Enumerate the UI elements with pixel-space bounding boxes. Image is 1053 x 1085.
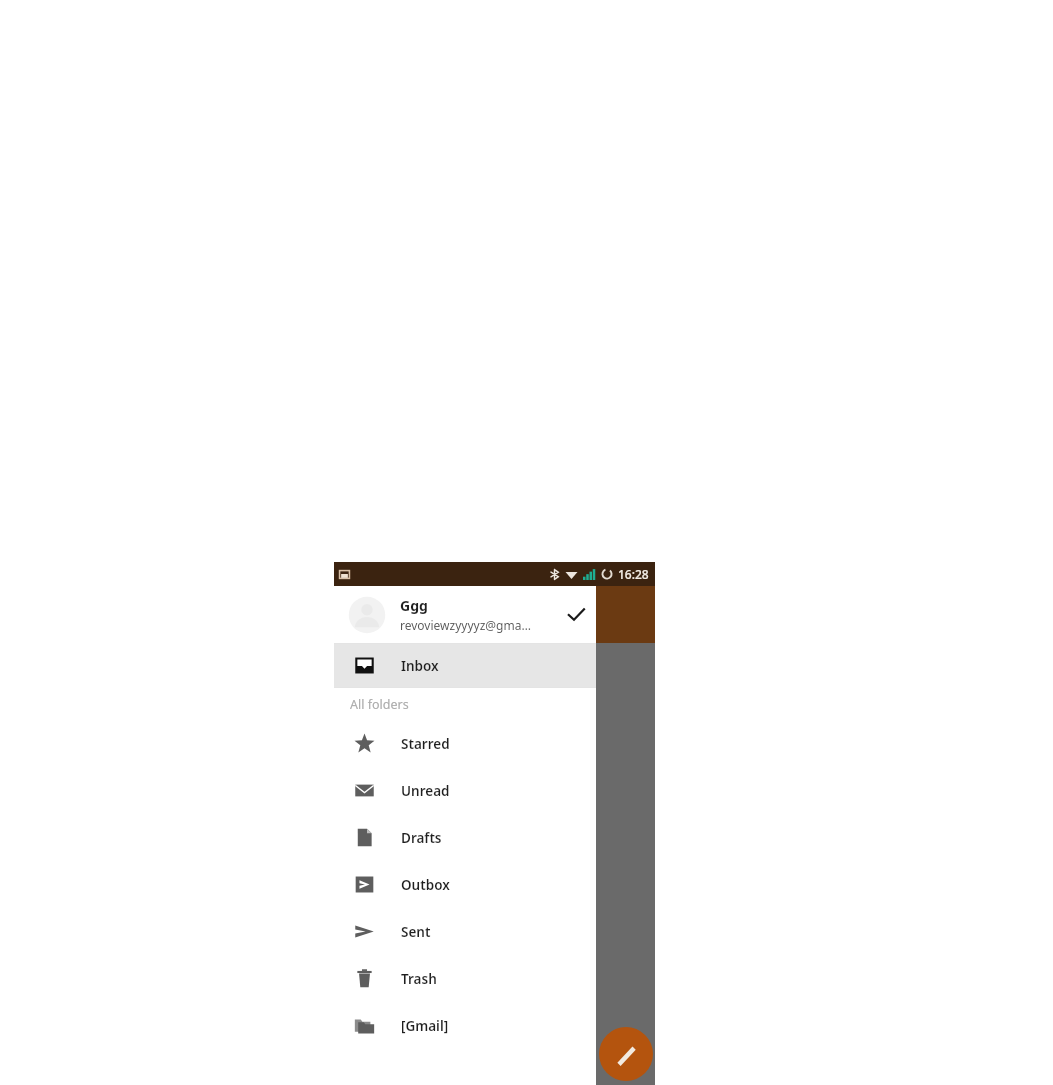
button[interactable]: Sent bbox=[334, 908, 596, 955]
staticText: revoviewzyyyyz@gma… bbox=[400, 617, 531, 633]
staticText: All folders bbox=[350, 696, 409, 713]
button[interactable]: Drafts bbox=[334, 814, 596, 861]
button[interactable]: Unread bbox=[334, 767, 596, 814]
button[interactable]: [Gmail] bbox=[334, 1002, 596, 1049]
staticText: Inbox bbox=[401, 657, 439, 675]
staticText: Drafts bbox=[401, 829, 442, 847]
staticText: 16:28 bbox=[618, 566, 649, 582]
button[interactable]: Trash bbox=[334, 955, 596, 1002]
button[interactable]: Outbox bbox=[334, 861, 596, 908]
button[interactable]: Starred bbox=[334, 720, 596, 767]
button[interactable]: Ggg bbox=[334, 586, 596, 643]
staticText: Sent bbox=[401, 923, 431, 941]
staticText: [Gmail] bbox=[401, 1017, 449, 1035]
staticText: Starred bbox=[401, 735, 450, 753]
staticText: Unread bbox=[401, 782, 450, 800]
button[interactable]: Inbox bbox=[334, 644, 596, 687]
staticText: Trash bbox=[401, 970, 437, 988]
button[interactable]: Compose bbox=[599, 1027, 653, 1081]
staticText: Ggg bbox=[400, 596, 428, 615]
staticText: Outbox bbox=[401, 876, 450, 894]
